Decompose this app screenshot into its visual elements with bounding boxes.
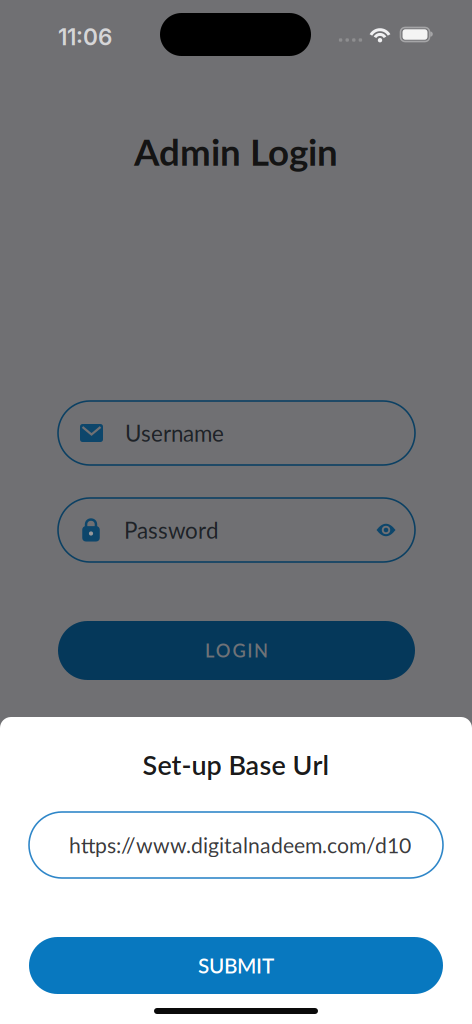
button[interactable]: Password xyxy=(58,498,415,562)
staticText: SUBMIT xyxy=(198,953,274,978)
staticText: L xyxy=(205,639,214,661)
staticText: Password xyxy=(124,517,219,543)
staticText: 11:06 xyxy=(58,23,112,51)
staticText: I xyxy=(247,639,252,661)
staticText: Username xyxy=(125,420,224,446)
button[interactable]: L xyxy=(58,621,415,680)
staticText: G xyxy=(232,639,245,661)
button[interactable]: Show password xyxy=(376,523,396,536)
staticText: Admin Login xyxy=(134,129,338,173)
staticText: O xyxy=(216,639,231,661)
staticText: N xyxy=(254,639,268,661)
staticText: https://www.digitalnadeem.com/d10 xyxy=(69,832,411,858)
button[interactable]: https://www.digitalnadeem.com/d10 xyxy=(29,812,443,878)
button[interactable]: Username xyxy=(58,401,415,465)
staticText: Set-up Base Url xyxy=(142,748,329,781)
button[interactable]: SUBMIT xyxy=(29,937,443,994)
